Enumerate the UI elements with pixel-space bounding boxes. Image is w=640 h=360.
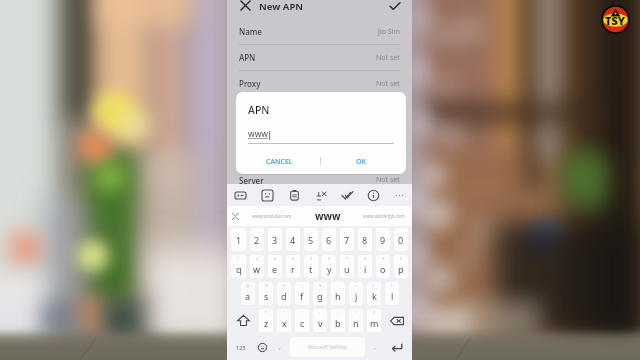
- button[interactable]: 5: [304, 255, 318, 278]
- button[interactable]: 5: [304, 228, 318, 251]
- staticText: y: [327, 263, 332, 275]
- button[interactable]: 9: [376, 255, 390, 278]
- button[interactable]: 0: [394, 255, 408, 278]
- button[interactable]: Server: [227, 175, 412, 184]
- button[interactable]: 2: [250, 255, 264, 278]
- staticText: Microsoft SwiftKey: [308, 344, 347, 350]
- button[interactable]: :: [313, 309, 327, 332]
- button[interactable]: 8: [358, 255, 372, 278]
- button[interactable]: #: [259, 282, 273, 305]
- button[interactable]: *: [259, 309, 273, 332]
- button[interactable]: !: [349, 309, 363, 332]
- button[interactable]: 1: [231, 255, 246, 278]
- button[interactable]: &: [313, 282, 327, 305]
- button[interactable]: Stickers: [254, 184, 281, 206]
- staticText: ): [391, 283, 393, 288]
- button[interactable]: Name: [227, 19, 412, 44]
- button[interactable]: 6: [322, 228, 336, 251]
- staticText: 2: [254, 234, 260, 246]
- button[interactable]: Emoji: [252, 334, 272, 360]
- button[interactable]: 2: [250, 228, 264, 251]
- staticText: $: [283, 283, 286, 288]
- button[interactable]: Tasks: [334, 184, 360, 206]
- staticText: f: [300, 290, 304, 302]
- button[interactable]: www.abcdefgh.com: [356, 206, 412, 226]
- staticText: @: [246, 283, 250, 288]
- button[interactable]: 7: [340, 228, 354, 251]
- button[interactable]: _: [295, 282, 309, 305]
- button[interactable]: Keyboard settings: [227, 184, 254, 206]
- staticText: 5: [310, 256, 313, 261]
- staticText: :: [319, 310, 321, 315]
- button[interactable]: 9: [376, 228, 390, 251]
- staticText: APN: [248, 103, 270, 117]
- button[interactable]: ?: [367, 309, 381, 332]
- button[interactable]: ': [295, 309, 309, 332]
- button[interactable]: CANCEL: [262, 154, 297, 170]
- button[interactable]: Enter: [383, 334, 410, 360]
- button[interactable]: (: [367, 282, 381, 305]
- button[interactable]: Microsoft SwiftKey: [290, 337, 365, 357]
- staticText: 0: [398, 234, 404, 246]
- staticText: b: [335, 317, 341, 329]
- button[interactable]: Translate: [308, 184, 334, 206]
- button[interactable]: ": [277, 309, 291, 332]
- button[interactable]: 4: [286, 228, 300, 251]
- button[interactable]: Shift: [229, 307, 257, 334]
- button[interactable]: ): [385, 282, 399, 305]
- button[interactable]: +: [349, 282, 363, 305]
- staticText: d: [281, 290, 287, 302]
- staticText: 2: [256, 256, 259, 261]
- button[interactable]: www: [300, 206, 356, 226]
- button[interactable]: 0: [394, 228, 408, 251]
- button[interactable]: APN: [227, 45, 412, 70]
- button[interactable]: Info: [360, 184, 386, 206]
- button[interactable]: Proxy: [227, 71, 412, 96]
- staticText: p: [398, 263, 404, 275]
- staticText: Name: [239, 26, 262, 37]
- button[interactable]: Channel logo: [601, 5, 630, 34]
- button[interactable]: Clipboard: [281, 184, 308, 206]
- staticText: 123: [236, 344, 246, 351]
- staticText: o: [380, 263, 386, 275]
- staticText: Password: [239, 156, 276, 167]
- button[interactable]: 7: [340, 255, 354, 278]
- button[interactable]: 4: [286, 255, 300, 278]
- button[interactable]: 3: [268, 255, 282, 278]
- button[interactable]: Port: [227, 97, 412, 122]
- staticText: m: [370, 317, 379, 329]
- staticText: 5: [308, 234, 314, 246]
- button[interactable]: OK: [352, 154, 370, 170]
- button[interactable]: Save: [388, 0, 401, 12]
- button[interactable]: ,: [272, 334, 288, 360]
- button[interactable]: Backspace: [383, 307, 410, 334]
- button[interactable]: ;: [331, 309, 345, 332]
- staticText: www: [248, 128, 269, 140]
- staticText: s: [264, 290, 269, 302]
- button[interactable]: $: [277, 282, 291, 305]
- staticText: New APN: [259, 0, 304, 13]
- staticText: 4: [292, 256, 295, 261]
- staticText: z: [264, 317, 269, 329]
- button[interactable]: 6: [322, 255, 336, 278]
- staticText: x: [282, 317, 287, 329]
- button[interactable]: More: [386, 184, 412, 206]
- button[interactable]: 3: [268, 228, 282, 251]
- button[interactable]: Close: [239, 0, 252, 12]
- staticText: www.youtube.com: [252, 213, 292, 219]
- button[interactable]: Username: [227, 123, 412, 148]
- button[interactable]: 123: [229, 334, 252, 360]
- button[interactable]: -: [331, 282, 345, 305]
- staticText: Not set: [376, 53, 400, 63]
- button[interactable]: @: [241, 282, 255, 305]
- button[interactable]: 1: [231, 228, 246, 251]
- button[interactable]: www.youtube.com: [243, 206, 300, 226]
- button[interactable]: 8: [358, 228, 372, 251]
- staticText: k: [372, 290, 377, 302]
- staticText: 9: [380, 234, 386, 246]
- button[interactable]: Password: [227, 149, 412, 174]
- button[interactable]: Expand: [227, 206, 243, 226]
- staticText: 1: [236, 234, 242, 246]
